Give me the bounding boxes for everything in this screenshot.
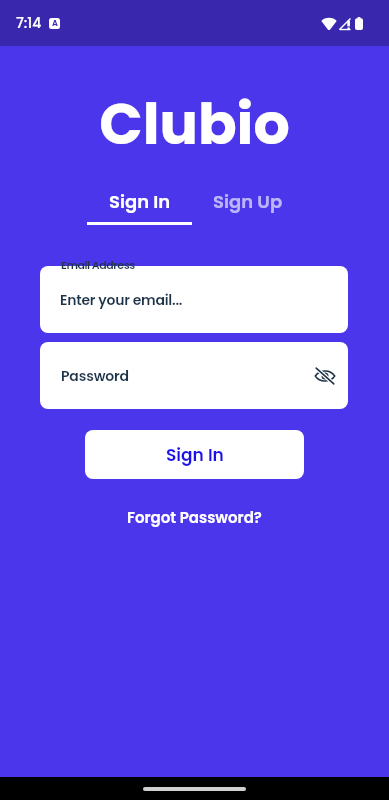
button[interactable]: Forgot Password? [119,503,270,532]
staticText: Sign In [109,189,171,214]
staticText: Forgot Password? [127,507,262,528]
button[interactable]: Sign In [87,186,192,217]
staticText: Enter your email... [60,290,183,310]
staticText: Sign In [166,443,224,467]
staticText: Sign Up [213,189,283,214]
button[interactable]: Password [40,342,348,409]
staticText: Password [61,366,129,386]
button[interactable]: Toggle password visibility [309,360,341,392]
staticText: Email Address [61,257,135,272]
staticText: A [52,18,58,29]
button[interactable]: Sign Up [203,186,293,217]
staticText: 7:14 [16,13,42,33]
staticText: Clubio [0,84,389,164]
button[interactable]: Enter your email... [40,266,348,333]
button[interactable]: Sign In [85,430,304,479]
